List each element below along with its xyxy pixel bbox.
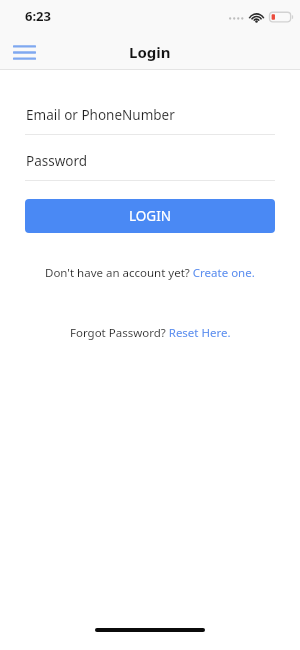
button[interactable]: Forgot Password? Reset Here. <box>0 325 300 341</box>
staticText: Email or PhoneNumber <box>26 106 175 124</box>
staticText: Password <box>26 152 88 170</box>
staticText: 6:23 <box>25 7 51 25</box>
button[interactable]: Don't have an account yet? Create one. <box>0 265 300 281</box>
button[interactable]: Email or PhoneNumber <box>0 106 300 135</box>
button[interactable]: Open navigation menu <box>7 36 41 68</box>
staticText: Forgot Password? Reset Here. <box>70 325 231 341</box>
button[interactable]: LOGIN <box>25 199 275 233</box>
staticText: LOGIN <box>129 207 172 225</box>
button[interactable]: Password <box>0 152 300 181</box>
staticText: Don't have an account yet? Create one. <box>45 265 255 281</box>
staticText: Login <box>129 42 171 62</box>
